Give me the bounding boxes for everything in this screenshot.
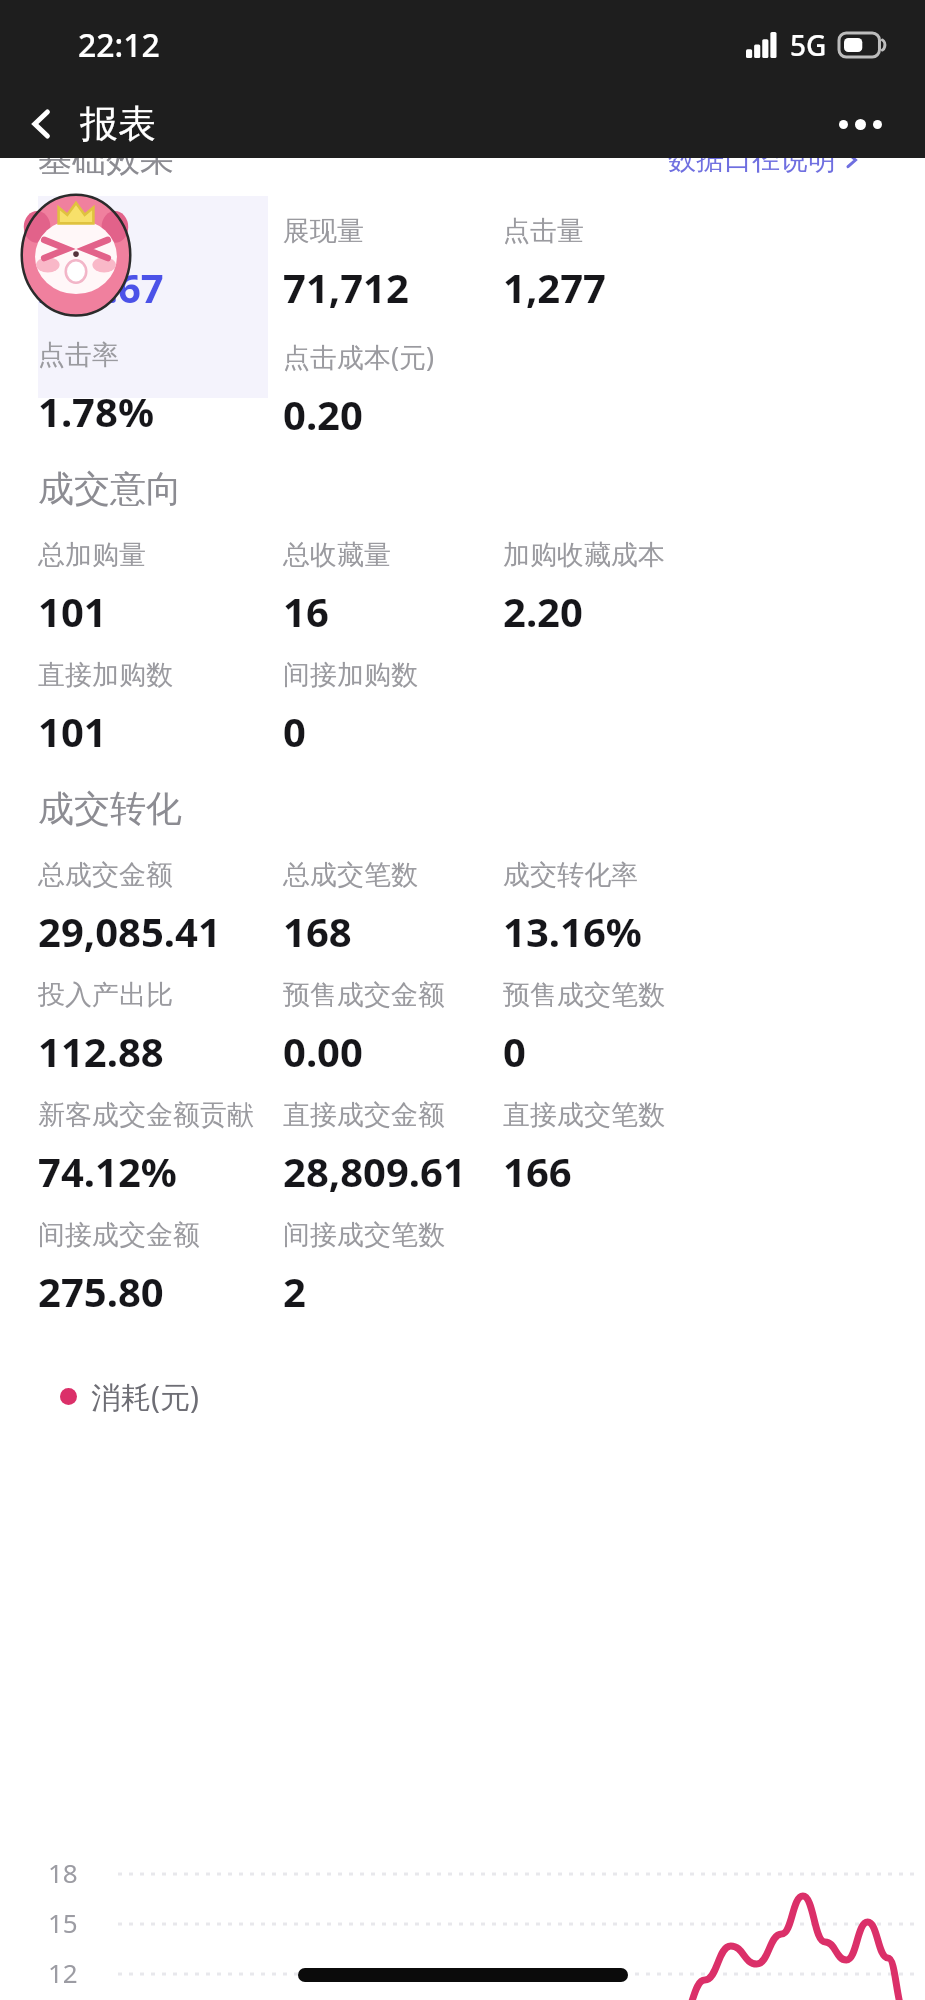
staticText: 28,809.61	[283, 1144, 466, 1198]
staticText: 74.12%	[38, 1144, 177, 1198]
staticText: 166	[503, 1144, 572, 1198]
button[interactable]: Back	[14, 96, 70, 152]
staticText: 13.16%	[503, 904, 642, 958]
staticText: 5G	[790, 26, 827, 64]
staticText: 18	[48, 1855, 78, 1890]
staticText: 0	[283, 704, 306, 758]
staticText: 总收藏量	[283, 538, 391, 572]
button[interactable]: 直接成交笔数	[503, 1098, 733, 1198]
staticText: 2	[283, 1264, 306, 1318]
staticText: 总成交笔数	[283, 858, 418, 892]
staticText: 预售成交金额	[283, 978, 445, 1012]
staticText: 间接加购数	[283, 658, 418, 692]
staticText: 112.88	[38, 1024, 164, 1078]
button[interactable]: 直接加购数	[38, 658, 268, 758]
staticText: 报表	[80, 100, 156, 148]
button[interactable]: 点击成本(元)	[283, 338, 513, 441]
button[interactable]: 预售成交笔数	[503, 978, 733, 1078]
button[interactable]: 展现量	[283, 214, 513, 314]
button[interactable]: 加购收藏成本	[503, 538, 733, 638]
staticText: 275.80	[38, 1264, 164, 1318]
staticText: 直接成交金额	[283, 1098, 445, 1132]
button[interactable]: Assistant avatar	[12, 186, 140, 314]
button[interactable]: 间接成交笔数	[283, 1218, 513, 1318]
staticText: 1,277	[503, 260, 606, 314]
staticText: 成交意向	[38, 466, 182, 511]
staticText: 成交转化率	[503, 858, 638, 892]
staticText: 新客成交金额贡献	[38, 1098, 254, 1132]
staticText: 成交转化	[38, 786, 182, 831]
staticText: 0.20	[283, 387, 363, 441]
button[interactable]: 新客成交金额贡献	[38, 1098, 268, 1198]
staticText: 直接成交笔数	[503, 1098, 665, 1132]
staticText: 预售成交笔数	[503, 978, 665, 1012]
staticText: 15	[48, 1905, 78, 1940]
staticText: 22:12	[78, 23, 160, 67]
button[interactable]: 总成交笔数	[283, 858, 513, 958]
staticText: 总成交金额	[38, 858, 173, 892]
staticText: 展现量	[283, 214, 364, 248]
staticText: 71,712	[283, 260, 409, 314]
staticText: 基础效果	[38, 138, 174, 181]
button[interactable]: 数据口径说明	[668, 142, 860, 177]
staticText: 花费	[38, 214, 92, 248]
button[interactable]: 直接成交金额	[283, 1098, 513, 1198]
staticText: 直接加购数	[38, 658, 173, 692]
staticText: 0	[503, 1024, 526, 1078]
staticText: 12	[48, 1955, 78, 1990]
staticText: 点击量	[503, 214, 584, 248]
button[interactable]: 成交转化率	[503, 858, 733, 958]
button[interactable]: 投入产出比	[38, 978, 268, 1078]
staticText: 点击成本(元)	[283, 338, 435, 375]
button[interactable]: 总成交金额	[38, 858, 268, 958]
button[interactable]: 点击率	[38, 338, 268, 438]
staticText: 间接成交金额	[38, 1218, 200, 1252]
staticText: 168	[283, 904, 352, 958]
staticText: 总加购量	[38, 538, 146, 572]
staticText: 16	[283, 584, 329, 638]
staticText: 消耗(元)	[91, 1376, 199, 1417]
button[interactable]: 总加购量	[38, 538, 268, 638]
staticText: 101	[38, 704, 107, 758]
staticText: 数据口径说明	[668, 142, 836, 177]
button[interactable]: 点击量	[503, 214, 733, 314]
staticText: 29,085.41	[38, 904, 221, 958]
button[interactable]: 间接加购数	[283, 658, 513, 758]
staticText: 0.00	[283, 1024, 363, 1078]
staticText: 101	[38, 584, 107, 638]
staticText: 1.78%	[38, 384, 154, 438]
button[interactable]: 总收藏量	[283, 538, 513, 638]
button[interactable]: 间接成交金额	[38, 1218, 268, 1318]
button[interactable]: 预售成交金额	[283, 978, 513, 1078]
staticText: 加购收藏成本	[503, 538, 665, 572]
button[interactable]: More options	[825, 96, 895, 152]
staticText: 2.20	[503, 584, 583, 638]
staticText: 257.67	[38, 260, 164, 314]
staticText: 点击率	[38, 338, 119, 372]
button[interactable]: 花费	[38, 214, 268, 314]
staticText: 投入产出比	[38, 978, 173, 1012]
staticText: 间接成交笔数	[283, 1218, 445, 1252]
